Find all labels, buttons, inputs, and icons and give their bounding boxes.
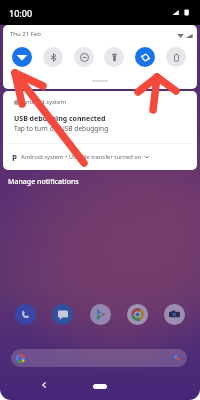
button[interactable]: Flashlight bbox=[104, 47, 124, 67]
button[interactable]: Back bbox=[38, 379, 50, 391]
button[interactable]: Bluetooth bbox=[43, 47, 63, 67]
staticText: Tap to turn off USB debugging bbox=[14, 124, 109, 133]
button[interactable]: Camera bbox=[164, 304, 185, 325]
button[interactable]: Wi-Fi bbox=[12, 47, 32, 67]
button[interactable]: Manage notifications bbox=[8, 177, 79, 187]
button[interactable]: Android system bbox=[3, 91, 197, 143]
staticText: USB debugging connected bbox=[14, 114, 106, 124]
button[interactable]: Auto rotate bbox=[135, 47, 155, 67]
button[interactable]: Search bbox=[11, 349, 187, 367]
button[interactable]: Messages bbox=[52, 304, 73, 325]
staticText: 10:00 bbox=[9, 7, 33, 19]
button[interactable]: Chrome bbox=[127, 304, 148, 325]
button[interactable]: Phone bbox=[15, 304, 36, 325]
staticText: Android system bbox=[22, 98, 66, 106]
button[interactable]: Battery saver bbox=[166, 47, 186, 67]
staticText: Thu 21 Feb bbox=[10, 30, 41, 38]
staticText: Android system • USB file transfer turne… bbox=[21, 153, 142, 161]
button[interactable]: Do not disturb bbox=[74, 47, 94, 67]
staticText: P bbox=[12, 152, 17, 163]
button[interactable]: P bbox=[3, 145, 197, 169]
button[interactable]: Home bbox=[93, 384, 107, 389]
button[interactable]: Play Store bbox=[90, 304, 111, 325]
